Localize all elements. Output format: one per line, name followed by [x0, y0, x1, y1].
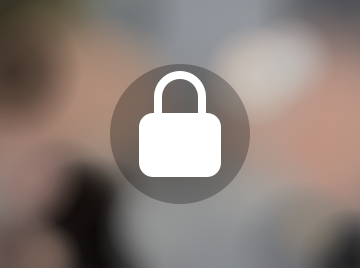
button[interactable]: Content locked — [110, 64, 250, 204]
